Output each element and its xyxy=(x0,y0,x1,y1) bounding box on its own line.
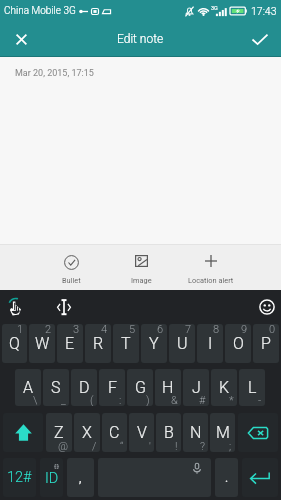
button[interactable]: Save xyxy=(246,25,274,53)
staticText: C xyxy=(109,423,120,442)
staticText: Edit note xyxy=(117,32,164,46)
button[interactable]: G xyxy=(127,369,153,406)
button[interactable]: T xyxy=(113,324,139,363)
button[interactable]: 12# xyxy=(3,458,36,497)
staticText: 4 xyxy=(101,324,108,336)
staticText: & xyxy=(171,394,178,406)
button[interactable]: Emoji xyxy=(256,296,278,318)
button[interactable]: Image xyxy=(106,245,176,290)
button[interactable]: C xyxy=(102,413,127,452)
staticText: Image xyxy=(131,276,152,285)
staticText: L xyxy=(248,378,257,397)
staticText: R xyxy=(93,334,104,353)
button[interactable]: Shift xyxy=(3,413,43,452)
button[interactable]: S xyxy=(43,369,69,406)
staticText: 2 xyxy=(45,324,52,336)
button[interactable]: L xyxy=(239,369,265,406)
staticText: O xyxy=(233,334,244,353)
staticText: 1 xyxy=(17,324,24,336)
staticText: 7 xyxy=(185,324,192,336)
staticText: ; xyxy=(229,440,232,452)
button[interactable]: O xyxy=(225,324,251,363)
button[interactable]: Space xyxy=(98,458,211,497)
staticText: 12# xyxy=(7,469,32,486)
staticText: 6 xyxy=(157,324,164,336)
staticText: 17:43 xyxy=(251,5,277,17)
staticText: A xyxy=(23,378,33,397)
button[interactable]: J xyxy=(183,369,209,406)
button[interactable]: A xyxy=(15,369,41,406)
staticText: # xyxy=(199,394,206,406)
staticText: ( xyxy=(90,394,94,406)
staticText: N xyxy=(190,423,202,442)
button[interactable]: X xyxy=(74,413,100,452)
button[interactable]: F xyxy=(99,369,125,406)
button[interactable]: Q xyxy=(2,324,27,363)
staticText: F xyxy=(108,378,117,397)
staticText: V xyxy=(137,423,147,442)
button[interactable]: V xyxy=(129,413,154,452)
button[interactable]: Close xyxy=(7,25,35,53)
staticText: X xyxy=(82,423,92,442)
button[interactable]: K xyxy=(211,369,237,406)
staticText: U xyxy=(177,334,188,353)
staticText: M xyxy=(216,423,230,442)
staticText: / xyxy=(92,440,97,452)
button[interactable]: B xyxy=(156,413,181,452)
staticText: Bullet xyxy=(62,276,81,285)
button[interactable]: P xyxy=(253,324,279,363)
button[interactable]: E xyxy=(57,324,83,363)
button[interactable]: Period xyxy=(215,458,238,497)
staticText: \ xyxy=(33,394,38,406)
button[interactable]: R xyxy=(85,324,111,363)
staticText: H xyxy=(162,378,174,397)
staticText: W xyxy=(35,334,50,353)
button[interactable]: U xyxy=(169,324,195,363)
button[interactable]: W xyxy=(29,324,55,363)
staticText: 5 xyxy=(129,324,136,336)
button[interactable]: Backspace xyxy=(238,413,278,452)
button[interactable]: Move cursor xyxy=(53,296,75,318)
staticText: P xyxy=(261,334,271,353)
staticText: ) xyxy=(146,394,150,406)
staticText: 3 xyxy=(73,324,80,336)
staticText: Z xyxy=(54,423,64,442)
button[interactable]: Bullet xyxy=(36,245,106,290)
staticText: B xyxy=(164,423,174,442)
button[interactable]: N xyxy=(183,413,208,452)
staticText: I xyxy=(208,334,213,353)
button[interactable]: H xyxy=(155,369,181,406)
staticText: ! xyxy=(175,440,178,452)
button[interactable]: Location alert xyxy=(176,245,246,290)
button[interactable]: M xyxy=(210,413,235,452)
button[interactable]: D xyxy=(71,369,97,406)
staticText: J xyxy=(192,378,201,397)
staticText: ? xyxy=(200,440,205,452)
button[interactable]: ID xyxy=(40,458,63,497)
staticText: ' xyxy=(149,440,151,452)
staticText: 0 xyxy=(269,324,276,336)
staticText: Location alert xyxy=(188,276,234,285)
button[interactable]: Enter xyxy=(242,458,278,497)
button[interactable]: Handwriting xyxy=(4,296,26,318)
button[interactable]: I xyxy=(197,324,223,363)
staticText: _ xyxy=(61,394,66,406)
staticText: @ xyxy=(58,440,69,452)
button[interactable]: Z xyxy=(46,413,72,452)
staticText: T xyxy=(121,334,131,353)
staticText: D xyxy=(79,378,90,397)
staticText: G xyxy=(135,378,146,397)
staticText: K xyxy=(219,378,230,397)
staticText: 9 xyxy=(241,324,248,336)
button[interactable]: Y xyxy=(141,324,167,363)
staticText: ID xyxy=(45,470,59,487)
button[interactable]: Comma xyxy=(67,458,94,497)
staticText: 8 xyxy=(213,324,220,336)
staticText: - xyxy=(258,394,262,406)
staticText: E xyxy=(65,334,75,353)
staticText: . xyxy=(225,471,229,485)
staticText: * xyxy=(229,394,234,406)
staticText: , xyxy=(79,471,82,485)
staticText: Q xyxy=(9,334,20,353)
staticText: Mar 20, 2015, 17:15 xyxy=(15,68,94,79)
